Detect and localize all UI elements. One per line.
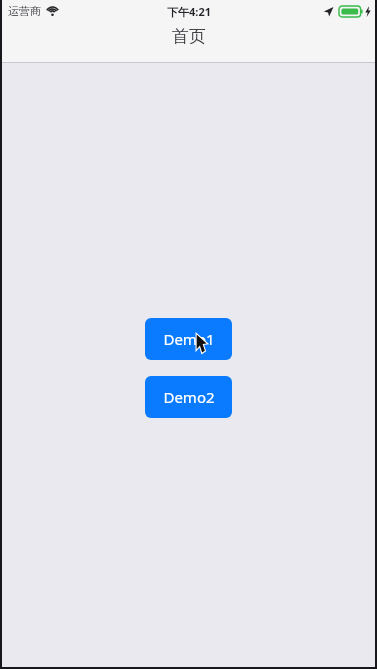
staticText: 首页 [172, 26, 206, 47]
button[interactable]: Demo2 [145, 376, 232, 418]
staticText: 运营商 [8, 4, 41, 18]
button[interactable]: Demo1 [145, 318, 232, 360]
staticText: Demo1 [163, 329, 215, 349]
staticText: 下午4:21 [167, 4, 211, 19]
staticText: Demo2 [163, 387, 215, 407]
